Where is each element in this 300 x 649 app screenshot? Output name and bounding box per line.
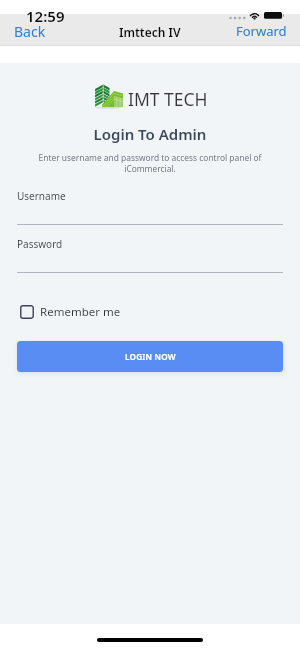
button[interactable]: Username input field [17,189,283,225]
staticText: Password [17,237,63,251]
staticText: Back [14,22,46,41]
staticText: Enter username and password to access co… [18,152,282,175]
staticText: 12:59 [26,6,65,24]
staticText: IMT TECH [128,87,208,111]
staticText: Login To Admin [0,124,300,144]
staticText: Remember me [40,304,121,320]
staticText: Username [17,189,66,203]
button[interactable]: Forward [226,20,300,44]
staticText: Forward [236,22,287,40]
button[interactable]: Back [0,20,56,45]
other: IMT Tech logo [93,84,123,109]
button[interactable]: Remember me [20,304,283,320]
staticText: LOGIN NOW [125,351,176,362]
button[interactable]: Password input field [17,237,283,273]
staticText: Imttech IV [119,24,181,40]
button[interactable]: LOGIN NOW [17,341,283,372]
